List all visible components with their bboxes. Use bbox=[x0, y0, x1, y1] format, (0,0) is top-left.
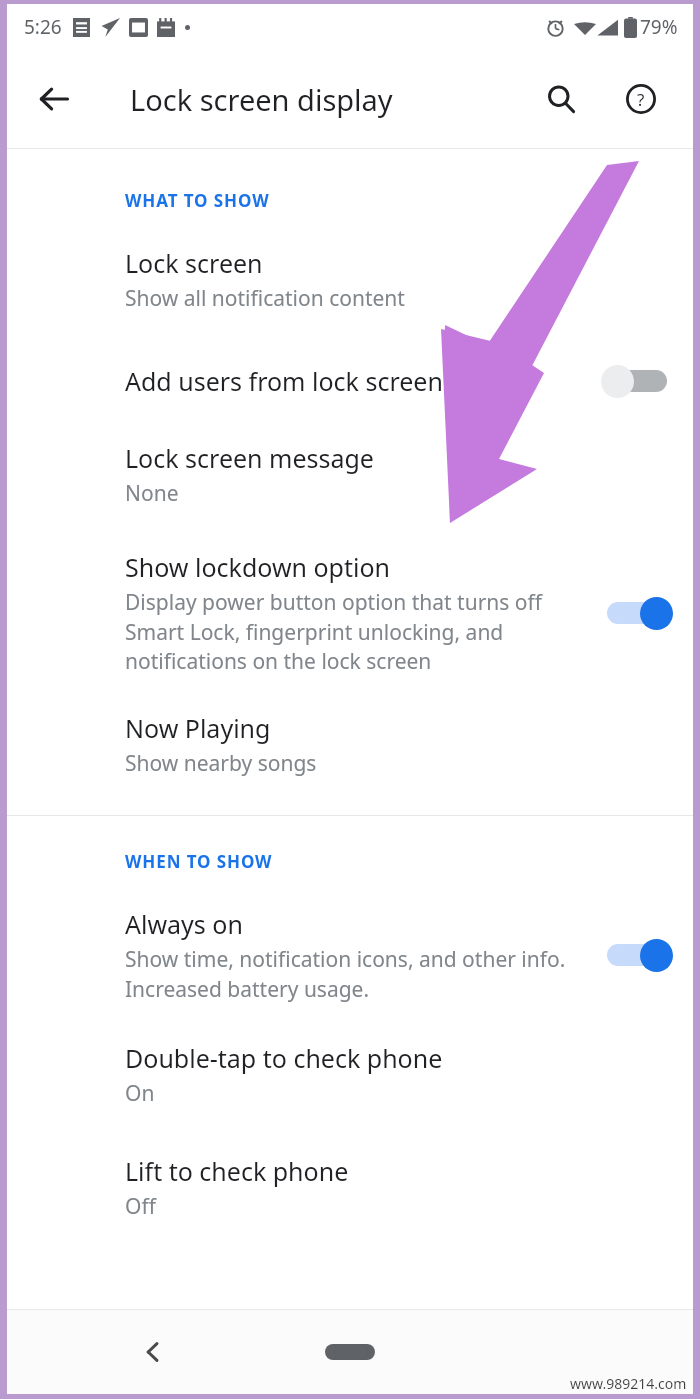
staticText: Add users from lock screen bbox=[125, 364, 443, 398]
staticText: Lock screen bbox=[125, 246, 263, 280]
staticText: Show time, notification icons, and other… bbox=[125, 945, 583, 1003]
staticText: Lock screen message bbox=[125, 441, 374, 475]
button[interactable]: Double-tap to check phone bbox=[7, 1041, 693, 1108]
staticText: Now Playing bbox=[125, 711, 271, 745]
button[interactable]: Home bbox=[325, 1344, 375, 1360]
staticText: WHAT TO SHOW bbox=[125, 189, 270, 212]
button[interactable]: Add users from lock screen bbox=[7, 359, 693, 403]
button[interactable]: Now Playing bbox=[7, 711, 693, 778]
staticText: WHEN TO SHOW bbox=[125, 850, 273, 873]
button[interactable]: Help bbox=[615, 73, 667, 125]
staticText: Display power button option that turns o… bbox=[125, 588, 583, 675]
button[interactable]: Back bbox=[129, 1328, 177, 1376]
staticText: Lift to check phone bbox=[125, 1154, 349, 1188]
staticText: Show all notification content bbox=[125, 284, 405, 313]
button[interactable] bbox=[601, 591, 673, 635]
staticText: Show nearby songs bbox=[125, 749, 317, 778]
button[interactable]: Lift to check phone bbox=[7, 1154, 693, 1221]
staticText: Off bbox=[125, 1192, 156, 1221]
staticText: ? bbox=[637, 88, 645, 111]
button[interactable]: Search bbox=[535, 73, 587, 125]
staticText: Double-tap to check phone bbox=[125, 1041, 443, 1075]
button[interactable]: Back bbox=[26, 71, 82, 127]
staticText: Show lockdown option bbox=[125, 550, 391, 584]
staticText: Always on bbox=[125, 907, 243, 941]
button[interactable]: Always on bbox=[7, 907, 693, 1003]
staticText: 5:26 bbox=[24, 14, 62, 40]
staticText: www.989214.com bbox=[570, 1374, 687, 1393]
staticText: Lock screen display bbox=[130, 80, 393, 119]
button[interactable]: Lock screen bbox=[7, 246, 693, 313]
button[interactable] bbox=[601, 359, 673, 403]
button[interactable]: Show lockdown option bbox=[7, 550, 693, 675]
button[interactable]: Lock screen message bbox=[7, 441, 693, 508]
staticText: 79% bbox=[640, 14, 678, 40]
staticText: None bbox=[125, 479, 179, 508]
button[interactable] bbox=[601, 933, 673, 977]
staticText: On bbox=[125, 1079, 155, 1108]
